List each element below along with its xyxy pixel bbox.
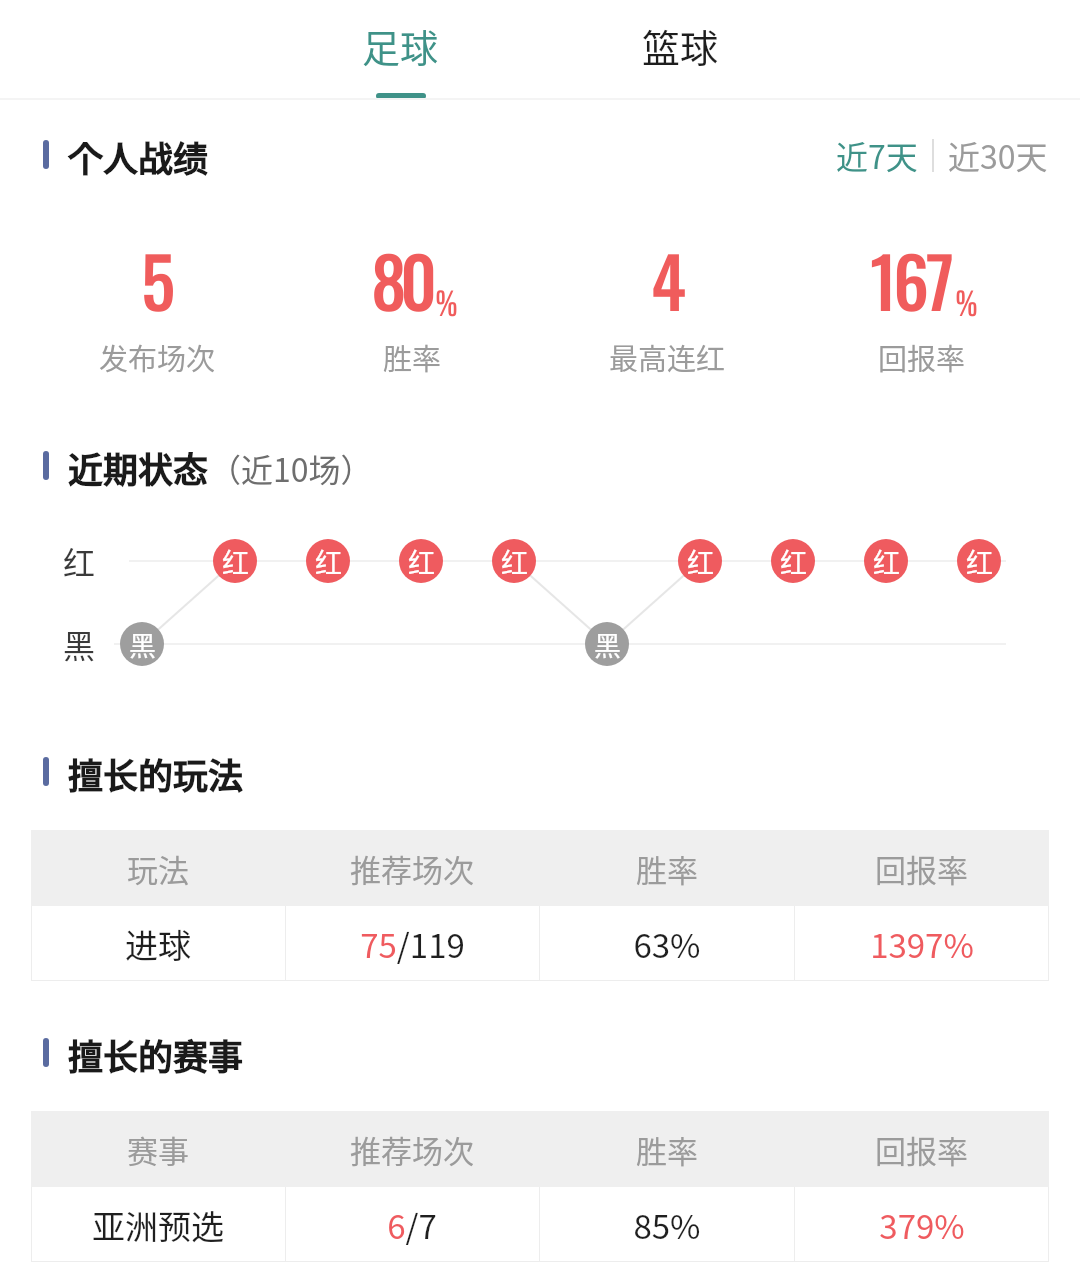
button[interactable]: 篮球 — [610, 0, 750, 99]
staticText: 黑 — [594, 625, 621, 664]
staticText: 红 — [63, 538, 96, 584]
staticText: 足球 — [362, 18, 439, 73]
staticText: 80 — [371, 227, 431, 331]
staticText: 近期状态 — [68, 442, 209, 493]
staticText: 75/119 — [360, 920, 465, 968]
staticText: 玩法 — [127, 846, 189, 891]
staticText: 红 — [873, 542, 900, 581]
staticText: （近10场） — [209, 445, 373, 491]
staticText: 5 — [141, 227, 170, 331]
staticText: 回报率 — [875, 1127, 968, 1172]
staticText: 黑 — [63, 621, 96, 667]
staticText: 4 — [651, 227, 680, 331]
staticText: 黑 — [129, 625, 156, 664]
staticText: 红 — [966, 542, 993, 581]
staticText: 红 — [315, 542, 342, 581]
staticText: 回报率 — [878, 336, 966, 378]
staticText: 推荐场次 — [350, 846, 474, 891]
staticText: 红 — [780, 542, 807, 581]
staticText: 167 — [870, 227, 951, 331]
staticText: 胜率 — [636, 846, 698, 891]
staticText: 近30天 — [948, 132, 1048, 178]
button[interactable]: 足球 — [330, 0, 470, 99]
staticText: 379% — [879, 1201, 965, 1249]
staticText: 擅长的赛事 — [68, 1029, 244, 1080]
staticText: 最高连红 — [609, 336, 726, 378]
staticText: 胜率 — [636, 1127, 698, 1172]
staticText: 1397% — [870, 920, 974, 968]
staticText: % — [955, 274, 978, 332]
staticText: 亚洲预选 — [92, 1201, 224, 1249]
staticText: 赛事 — [127, 1127, 189, 1172]
button[interactable]: 近30天 — [934, 130, 1062, 180]
staticText: 红 — [501, 542, 528, 581]
staticText: 红 — [687, 542, 714, 581]
staticText: 进球 — [125, 920, 191, 968]
staticText: % — [435, 274, 458, 332]
staticText: 推荐场次 — [350, 1127, 474, 1172]
staticText: 回报率 — [875, 846, 968, 891]
staticText: 个人战绩 — [68, 131, 209, 182]
staticText: 擅长的玩法 — [68, 748, 244, 799]
staticText: 发布场次 — [99, 336, 216, 378]
staticText: 胜率 — [383, 336, 442, 378]
staticText: 近7天 — [836, 132, 918, 178]
staticText: 6/7 — [387, 1201, 437, 1249]
staticText: 红 — [408, 542, 435, 581]
button[interactable]: 近7天 — [822, 130, 932, 180]
staticText: 红 — [222, 542, 249, 581]
staticText: 85% — [633, 1201, 701, 1249]
staticText: 63% — [633, 920, 701, 968]
staticText: 篮球 — [642, 18, 719, 73]
